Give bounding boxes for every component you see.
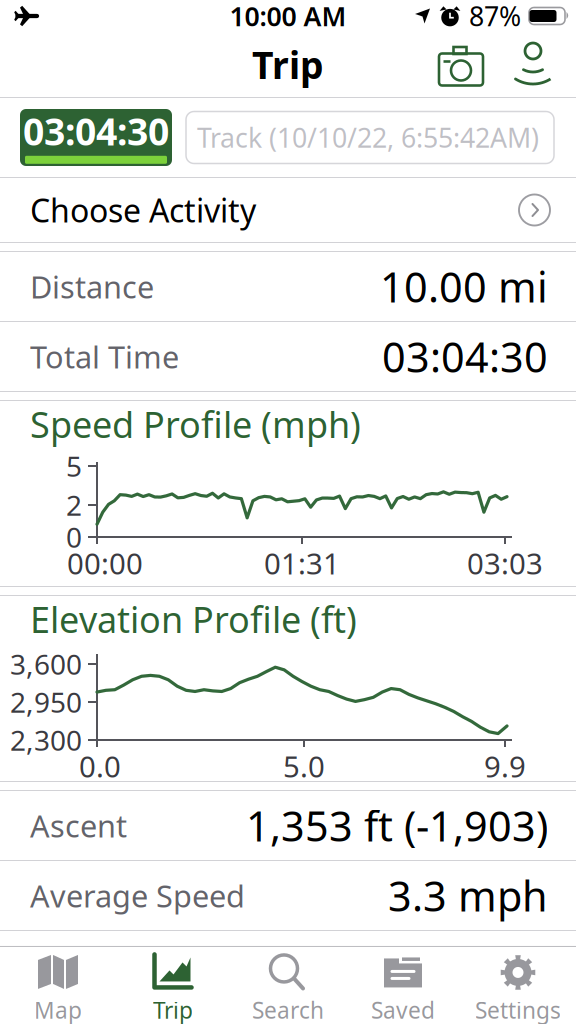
button[interactable]: Search bbox=[230, 954, 345, 1024]
staticText: 10.00 mi bbox=[380, 259, 548, 314]
staticText: 0.0 bbox=[79, 746, 121, 785]
button[interactable]: Camera bbox=[437, 43, 485, 85]
staticText: 2,300 bbox=[10, 721, 82, 759]
staticText: 2 bbox=[66, 486, 82, 524]
button[interactable]: Map bbox=[0, 954, 115, 1024]
staticText: Saved bbox=[371, 995, 435, 1024]
staticText: 5 bbox=[66, 447, 82, 485]
staticText: 2,950 bbox=[10, 683, 82, 721]
staticText: 87% bbox=[469, 0, 521, 34]
staticText: 10:00 AM bbox=[229, 0, 346, 34]
staticText: Track (10/10/22, 6:55:42AM) bbox=[197, 120, 539, 155]
staticText: 00:00 bbox=[67, 543, 143, 582]
staticText: 01:31 bbox=[264, 543, 340, 582]
button[interactable]: Saved bbox=[345, 954, 460, 1024]
staticText: 03:04:30 bbox=[382, 329, 548, 384]
staticText: 5.0 bbox=[283, 746, 325, 785]
staticText: 9.9 bbox=[484, 746, 526, 785]
staticText: 1,353 ft (-1,903) bbox=[246, 798, 548, 853]
button[interactable]: Settings bbox=[460, 954, 575, 1024]
button[interactable]: Choose Activity bbox=[0, 178, 576, 242]
button[interactable]: Record Track bbox=[511, 43, 555, 86]
staticText: Choose Activity bbox=[30, 189, 256, 231]
button[interactable]: Trip bbox=[115, 954, 230, 1024]
button[interactable]: Track name bbox=[186, 111, 554, 163]
staticText: Ascent bbox=[30, 805, 127, 846]
staticText: Trip bbox=[252, 40, 324, 89]
staticText: Trip bbox=[153, 995, 193, 1024]
staticText: Map bbox=[34, 995, 82, 1024]
staticText: 3.3 mph bbox=[388, 868, 548, 923]
staticText: 3,600 bbox=[10, 645, 82, 683]
staticText: Speed Profile (mph) bbox=[30, 400, 361, 448]
staticText: Elevation Profile (ft) bbox=[30, 595, 357, 643]
staticText: Distance bbox=[30, 266, 154, 307]
staticText: Total Time bbox=[30, 336, 179, 377]
staticText: 03:04:30 bbox=[23, 106, 169, 156]
staticText: 03:03 bbox=[467, 543, 543, 582]
staticText: 0 bbox=[66, 518, 82, 556]
staticText: Average Speed bbox=[30, 875, 245, 916]
button[interactable]: 03:04:30 bbox=[20, 109, 172, 166]
staticText: Search bbox=[252, 995, 324, 1024]
staticText: Settings bbox=[475, 995, 561, 1024]
